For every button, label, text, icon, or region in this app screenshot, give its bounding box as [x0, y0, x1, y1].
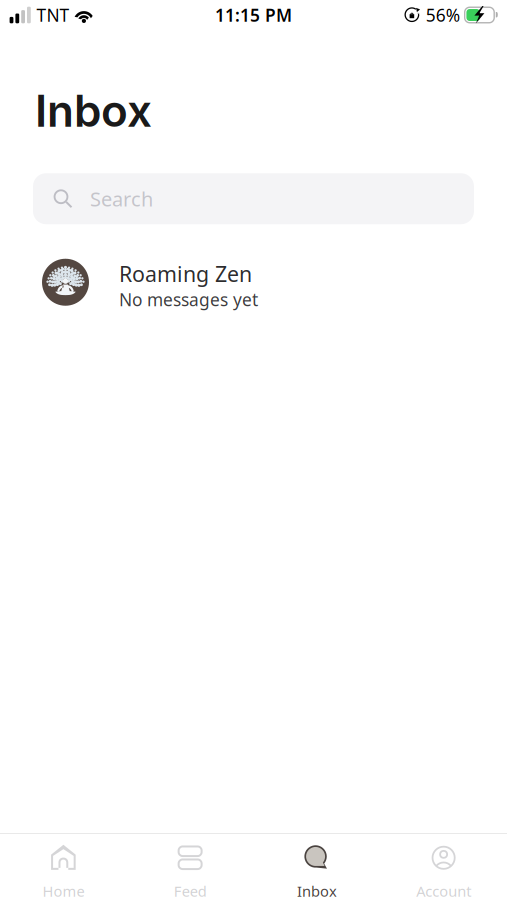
staticText: Home	[42, 881, 84, 900]
button[interactable]: Inbox	[253, 834, 380, 900]
button[interactable]: Roaming Zen	[0, 248, 507, 316]
staticText: Roaming Zen	[119, 260, 252, 288]
staticText: Search	[90, 185, 153, 212]
button[interactable]: Feed	[127, 834, 254, 900]
staticText: Inbox	[297, 881, 337, 900]
staticText: Account	[416, 881, 471, 900]
staticText: TNT	[36, 3, 69, 26]
staticText: Feed	[174, 881, 207, 900]
staticText: Inbox	[35, 84, 152, 137]
staticText: No messages yet	[119, 288, 258, 311]
button[interactable]: Account	[380, 834, 507, 900]
staticText: 11:15 PM	[215, 3, 292, 26]
button[interactable]: Home	[0, 834, 127, 900]
button[interactable]: Search	[33, 173, 474, 224]
staticText: 56%	[426, 3, 460, 26]
